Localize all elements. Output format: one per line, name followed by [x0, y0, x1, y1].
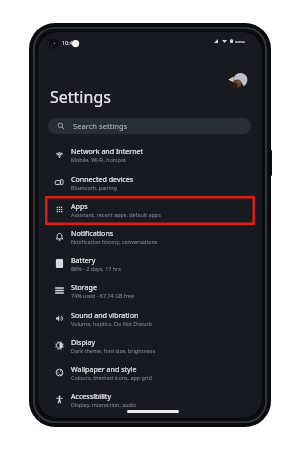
- staticText: Accessibility: [71, 391, 112, 401]
- staticText: Connected devices: [71, 174, 134, 184]
- staticText: 88% - 2 days, 17 hrs: [71, 265, 121, 272]
- staticText: 74% used - 67.74 GB free: [71, 292, 134, 299]
- staticText: Wallpaper and style: [71, 364, 137, 374]
- staticText: Notification history, conversations: [71, 238, 158, 245]
- button[interactable]: Display: [38, 332, 262, 359]
- staticText: Notifications: [71, 228, 114, 238]
- staticText: Sound and vibration: [71, 310, 139, 320]
- button[interactable]: Connected devices: [38, 169, 262, 196]
- button[interactable]: Account: [226, 70, 249, 89]
- staticText: Dark theme, font size, brightness: [71, 347, 155, 354]
- button[interactable]: Accessibility: [38, 386, 262, 413]
- staticText: Storage: [71, 282, 97, 292]
- staticText: Network and Internet: [71, 146, 144, 156]
- staticText: Display: [71, 337, 96, 347]
- staticText: Assistant, recent apps, default apps: [71, 211, 161, 218]
- button[interactable]: Sound and vibration: [38, 305, 262, 332]
- staticText: Volume, haptics, Do Not Disturb: [71, 320, 153, 327]
- staticText: Apps: [71, 201, 88, 211]
- staticText: Bluetooth, pairing: [71, 184, 117, 191]
- button[interactable]: Notifications: [38, 223, 262, 250]
- staticText: 88%: [235, 39, 246, 43]
- button[interactable]: Search settings: [48, 118, 251, 134]
- button[interactable]: Network and Internet: [38, 141, 262, 168]
- button[interactable]: Storage: [38, 277, 262, 304]
- staticText: 10:4: [62, 39, 73, 46]
- button[interactable]: Battery: [38, 250, 262, 277]
- staticText: Settings: [50, 86, 111, 108]
- staticText: Search settings: [73, 121, 128, 131]
- staticText: Colours, themed icons, app grid: [71, 374, 152, 381]
- staticText: Display, interaction, audio: [71, 401, 137, 408]
- button[interactable]: Apps: [38, 196, 262, 223]
- staticText: Mobile, Wi-Fi, hotspot: [71, 156, 126, 163]
- staticText: Battery: [71, 255, 96, 265]
- button[interactable]: Wallpaper and style: [38, 359, 262, 386]
